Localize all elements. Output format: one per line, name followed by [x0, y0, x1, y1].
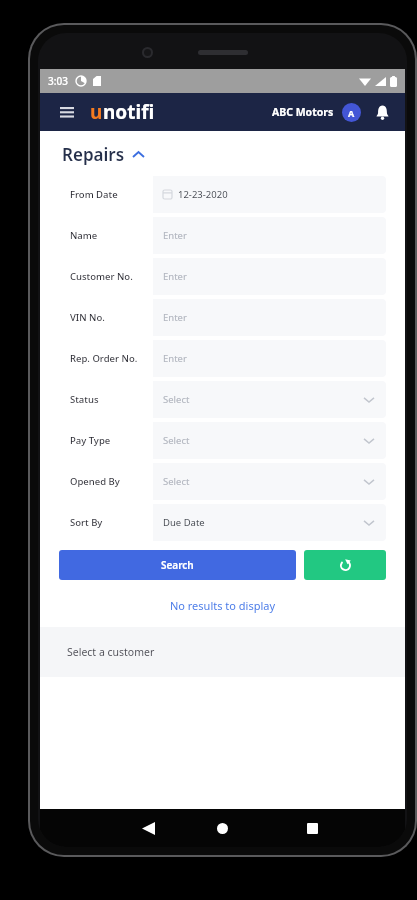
staticText: Due Date [163, 516, 205, 529]
button[interactable]: Back [124, 809, 172, 847]
button[interactable]: Customer No. [59, 258, 386, 295]
button[interactable]: VIN No. [59, 299, 386, 336]
button[interactable]: Status [59, 381, 386, 418]
button[interactable]: Menu [54, 99, 80, 125]
button[interactable]: Pay Type [59, 422, 386, 459]
staticText: Opened By [70, 475, 120, 488]
staticText: Name [70, 229, 98, 242]
button[interactable]: Opened By [59, 463, 386, 500]
staticText: Enter [163, 229, 187, 242]
staticText: No results to display [40, 598, 405, 613]
staticText: Search [161, 558, 194, 572]
staticText: u [90, 99, 103, 125]
staticText: 12-23-2020 [178, 188, 228, 201]
button[interactable]: Select a customer [40, 627, 405, 677]
staticText: Customer No. [70, 270, 133, 283]
button[interactable]: Recent apps [288, 809, 336, 847]
staticText: Rep. Order No. [70, 352, 138, 365]
staticText: Select [163, 434, 190, 447]
staticText: VIN No. [70, 311, 105, 324]
staticText: Enter [163, 352, 187, 365]
button[interactable]: Repairs [62, 143, 144, 166]
staticText: Select a customer [67, 645, 155, 659]
staticText: A [348, 107, 355, 119]
staticText: Enter [163, 311, 187, 324]
staticText: Sort By [70, 516, 103, 529]
button[interactable]: Notifications [371, 101, 393, 123]
button[interactable]: Name [59, 217, 386, 254]
button[interactable]: Account [342, 103, 361, 122]
staticText: Status [70, 393, 99, 406]
button[interactable]: From Date [59, 176, 386, 213]
staticText: notifi [103, 99, 155, 125]
button[interactable]: Home [198, 809, 246, 847]
button[interactable]: Search [59, 550, 296, 580]
button[interactable]: Sort By [59, 504, 386, 541]
button[interactable]: Rep. Order No. [59, 340, 386, 377]
staticText: 3:03 [48, 74, 68, 88]
button[interactable]: ABC Motors [272, 105, 334, 119]
staticText: Pay Type [70, 434, 111, 447]
staticText: Repairs [62, 143, 125, 166]
staticText: From Date [70, 188, 118, 201]
staticText: Select [163, 475, 190, 488]
staticText: Enter [163, 270, 187, 283]
button[interactable]: Refresh [304, 550, 386, 580]
staticText: Select [163, 393, 190, 406]
